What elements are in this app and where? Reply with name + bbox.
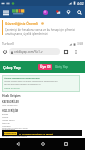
staticText: Çıkış Yap: [3, 65, 21, 70]
staticText: İkinci El: [2, 122, 10, 125]
staticText: İş Makineleri: [2, 128, 16, 131]
staticText: labore et dolore: [4, 87, 20, 90]
staticText: Yedek Parça: [2, 119, 15, 122]
staticText: KATEGORİLER: [2, 100, 19, 103]
button[interactable]: Back: [13, 139, 23, 149]
staticText: sed do eiusmod tempor incididunt ut: [4, 83, 41, 86]
button[interactable]: Giriş Yap: [54, 65, 70, 69]
staticText: unuttuysanız, üyelik işlemlerinizi: [5, 32, 48, 36]
button[interactable]: More options: [72, 48, 79, 55]
button[interactable]: Reload: [1, 48, 8, 55]
button[interactable]: Ustalar: [2, 131, 10, 134]
staticText: Alışveriş: [2, 125, 11, 128]
staticText: cebilbyap.com/%c1-v: [14, 50, 43, 54]
staticText: 3:58: [77, 42, 83, 46]
staticText: Giriş Yap: [55, 65, 69, 69]
button[interactable]: Tabs: [62, 48, 69, 55]
staticText: Sponsorlu reklam alanı: [2, 126, 28, 129]
button[interactable]: Emlak: [2, 113, 9, 116]
button[interactable]: Alışveriş: [2, 125, 11, 128]
button[interactable]: Home: [38, 139, 48, 149]
button[interactable]: KAMPANYA: [2, 130, 82, 136]
button[interactable]: İş Makineleri: [2, 128, 16, 131]
button[interactable]: Menu: [2, 8, 10, 16]
staticText: Ustalar: [2, 131, 10, 134]
button[interactable]: Yedek Parça: [2, 119, 15, 122]
button[interactable]: Location: [64, 8, 72, 16]
staticText: Emlak: [2, 113, 9, 116]
staticText: Lorem ipsum dolor sit amet consectetur a…: [4, 80, 58, 83]
staticText: Güvenli e-ticaret ve ödeme: [2, 135, 28, 138]
button[interactable]: Üye Ol: [38, 64, 52, 70]
staticText: KAMPANYA: [4, 132, 17, 135]
button[interactable]: Messages: [54, 8, 62, 16]
staticText: Tüm kategoriler: [2, 104, 18, 107]
button[interactable]: Vasıta: [2, 116, 9, 119]
staticText: Vasıta: [2, 116, 9, 119]
staticText: 4:02: [77, 1, 84, 5]
staticText: HIZLI ERİŞİM: [2, 109, 19, 112]
staticText: Üye Ol: [40, 65, 51, 69]
staticText: % 18 Peşin Fiyatına 12 Taksit: [19, 132, 53, 135]
button[interactable]: cebilbyap.com/%c1-v: [9, 48, 60, 55]
staticText: Güvenliğiniz Önemli: [5, 21, 39, 25]
button[interactable]: İkinci El: [2, 122, 10, 125]
button[interactable]: Account: [41, 8, 49, 16]
staticText: Hızlı Erişim: [2, 93, 21, 98]
staticText: Üyelik Bilgileriniz Güncellendi: [4, 76, 40, 79]
staticText: Turkcell: [2, 42, 14, 46]
button[interactable]: Recent apps: [61, 139, 71, 149]
button[interactable]: Search: [75, 8, 83, 16]
staticText: Çevrimiçi bir hesabınız varsa ve bu hesa…: [5, 28, 75, 32]
